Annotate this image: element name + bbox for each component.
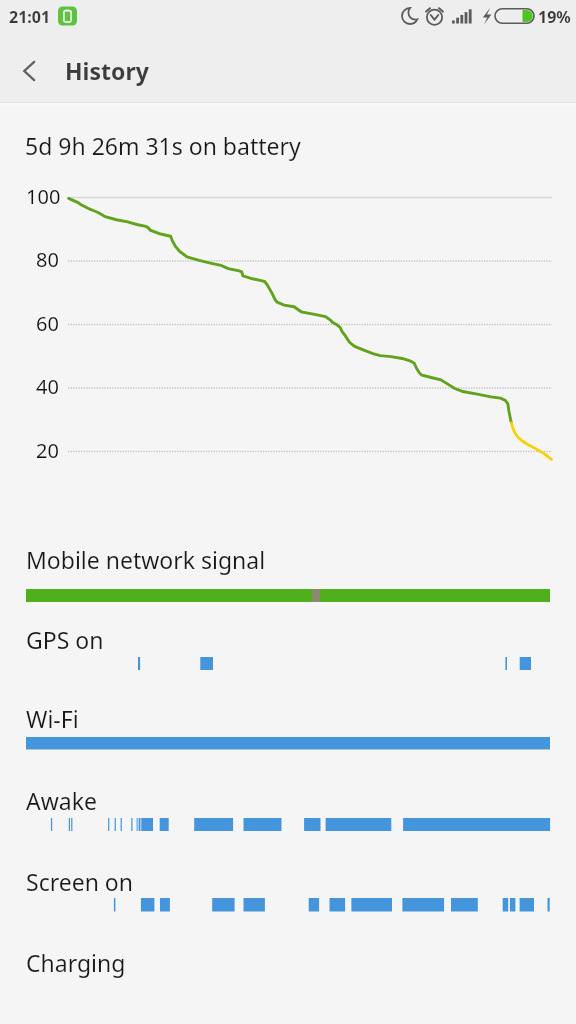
staticText: 19% bbox=[538, 6, 571, 28]
staticText: 60 bbox=[36, 310, 59, 337]
staticText: 40 bbox=[36, 373, 59, 400]
staticText: 21:01 bbox=[9, 6, 51, 28]
staticText: Screen on bbox=[26, 866, 133, 897]
staticText: 100 bbox=[26, 183, 61, 210]
staticText: Awake bbox=[26, 785, 97, 816]
staticText: 80 bbox=[36, 246, 59, 273]
button[interactable]: Back bbox=[0, 38, 60, 103]
staticText: 5d 9h 26m 31s on battery bbox=[25, 130, 301, 161]
staticText: Mobile network signal bbox=[26, 544, 266, 575]
staticText: History bbox=[65, 55, 149, 86]
staticText: Charging bbox=[26, 947, 126, 978]
staticText: GPS on bbox=[26, 624, 104, 655]
staticText: Wi-Fi bbox=[26, 703, 79, 734]
staticText: 20 bbox=[36, 437, 59, 464]
